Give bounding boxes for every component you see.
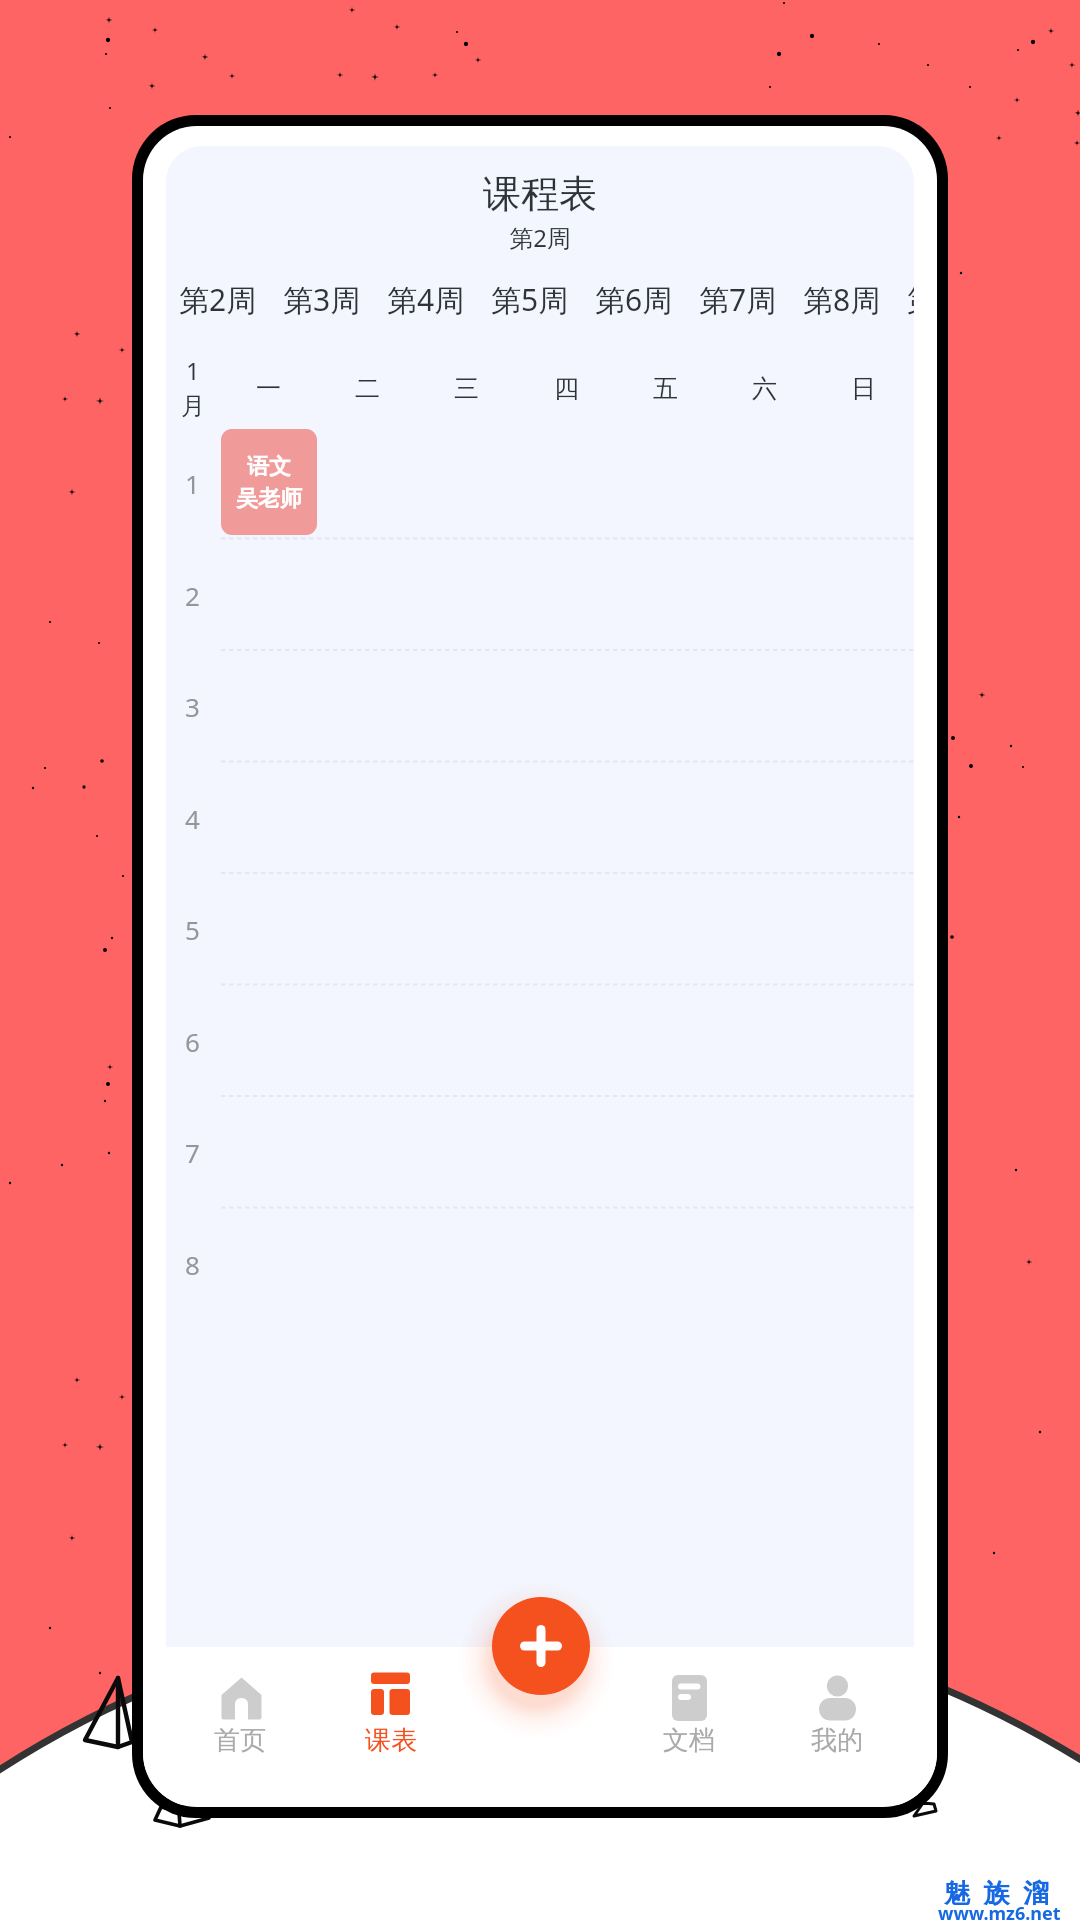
staticText: 语文 <box>247 453 291 481</box>
staticText: 第2周 <box>179 279 257 320</box>
staticText: 六 <box>752 373 777 401</box>
staticText: 课程表 <box>166 170 914 218</box>
button[interactable]: 课表 <box>336 1647 446 1805</box>
staticText: 吴老师 <box>236 485 302 513</box>
staticText: 6 <box>185 1024 200 1059</box>
staticText: 第4周 <box>387 279 465 320</box>
button[interactable]: 我的 <box>782 1647 892 1805</box>
button[interactable]: 第6周 <box>595 277 699 321</box>
staticText: 7 <box>185 1135 200 1170</box>
button[interactable]: 第7周 <box>699 277 803 321</box>
button[interactable]: 第2周 <box>179 277 283 321</box>
button[interactable]: 第9周 <box>907 277 914 321</box>
staticText: 我的 <box>782 1724 892 1757</box>
button[interactable]: 语文 <box>221 429 317 535</box>
button[interactable]: 第5周 <box>491 277 595 321</box>
button[interactable]: 第3周 <box>283 277 387 321</box>
staticText: 第8周 <box>803 279 881 320</box>
staticText: 一 <box>256 373 281 401</box>
staticText: 2 <box>185 578 200 613</box>
button[interactable]: 首页 <box>185 1647 295 1805</box>
staticText: 四 <box>554 373 579 401</box>
staticText: 三 <box>454 373 479 401</box>
staticText: 1 <box>185 466 200 501</box>
staticText: 课表 <box>336 1724 446 1757</box>
staticText: 第7周 <box>699 279 777 320</box>
staticText: 月 <box>181 391 205 421</box>
staticText: 第2周 <box>166 221 914 254</box>
staticText: 五 <box>653 373 678 401</box>
staticText: 第6周 <box>595 279 673 320</box>
staticText: 日 <box>851 373 876 401</box>
button[interactable]: 文档 <box>634 1647 744 1805</box>
button[interactable]: 第8周 <box>803 277 907 321</box>
staticText: 1 <box>186 354 200 387</box>
staticText: 8 <box>185 1247 200 1282</box>
staticText: 魅 族 溜 <box>944 1874 1050 1910</box>
button[interactable]: Add course <box>492 1597 590 1695</box>
staticText: 首页 <box>185 1724 295 1757</box>
staticText: 第3周 <box>283 279 361 320</box>
button[interactable]: 第4周 <box>387 277 491 321</box>
staticText: 3 <box>185 689 200 724</box>
staticText: www.mz6.net <box>938 1901 1061 1920</box>
staticText: 文档 <box>634 1724 744 1757</box>
staticText: 第9周 <box>907 279 914 320</box>
staticText: 5 <box>185 912 200 947</box>
staticText: 4 <box>185 801 200 836</box>
staticText: 二 <box>355 373 380 401</box>
staticText: 第5周 <box>491 279 569 320</box>
